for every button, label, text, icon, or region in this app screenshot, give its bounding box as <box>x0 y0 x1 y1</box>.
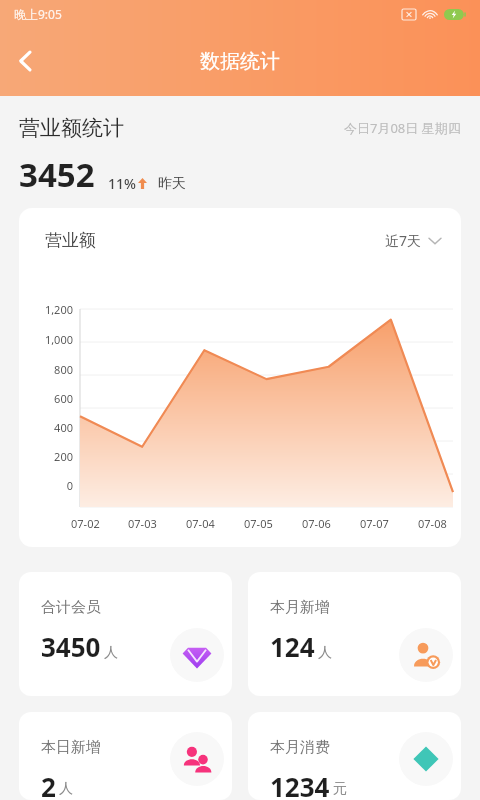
staticText: 07-08 <box>418 516 447 531</box>
button[interactable]: 近7天 <box>385 231 441 250</box>
staticText: 3450 <box>41 629 101 664</box>
staticText: 数据统计 <box>200 49 280 74</box>
staticText: 07-02 <box>71 516 100 531</box>
staticText: 400 <box>54 420 73 435</box>
staticText: 800 <box>54 362 73 377</box>
staticText: 1234 <box>270 769 330 800</box>
staticText: 07-07 <box>360 516 389 531</box>
staticText: 200 <box>54 449 73 464</box>
staticText: 人 <box>318 644 332 662</box>
staticText: 本日新增 <box>41 738 101 757</box>
button[interactable]: 本月消费 <box>248 712 461 800</box>
staticText: 人 <box>104 644 118 662</box>
staticText: 元 <box>333 780 347 798</box>
staticText: 11% <box>108 174 136 193</box>
staticText: 124 <box>270 629 315 664</box>
button[interactable]: Back <box>0 35 52 87</box>
staticText: 07-05 <box>244 516 273 531</box>
staticText: 晚上9:05 <box>14 6 62 22</box>
staticText: 07-06 <box>302 516 331 531</box>
staticText: 营业额统计 <box>19 115 124 141</box>
staticText: 3452 <box>19 152 95 197</box>
staticText: 近7天 <box>385 231 422 250</box>
staticText: 1,200 <box>44 302 73 317</box>
staticText: 600 <box>54 391 73 406</box>
button[interactable]: 本月新增 <box>248 572 461 696</box>
staticText: 营业额 <box>45 230 96 251</box>
staticText: 本月新增 <box>270 598 330 617</box>
staticText: 07-03 <box>128 516 157 531</box>
staticText: 0 <box>66 478 73 493</box>
staticText: 合计会员 <box>41 598 101 617</box>
staticText: 1,000 <box>44 332 73 347</box>
button[interactable]: 本日新增 <box>19 712 232 800</box>
staticText: 昨天 <box>158 175 186 193</box>
button[interactable]: 合计会员 <box>19 572 232 696</box>
staticText: 2 <box>41 769 56 800</box>
staticText: 07-04 <box>186 516 215 531</box>
staticText: 人 <box>59 780 73 798</box>
staticText: 今日7月08日 星期四 <box>344 119 461 137</box>
staticText: 本月消费 <box>270 738 330 757</box>
